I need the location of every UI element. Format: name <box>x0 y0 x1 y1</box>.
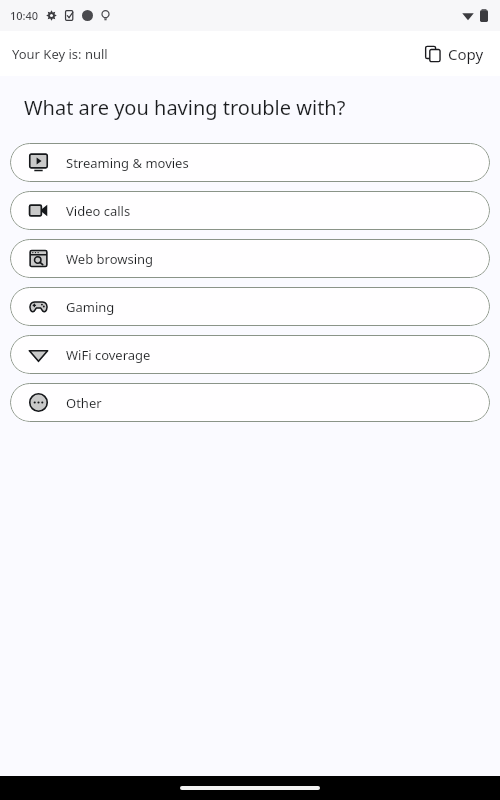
staticText: Video calls <box>66 202 131 220</box>
button[interactable]: Streaming & movies <box>10 143 490 182</box>
staticText: Streaming & movies <box>66 154 189 172</box>
button[interactable]: Other <box>10 383 490 422</box>
staticText: WiFi coverage <box>66 346 151 364</box>
other: Copy <box>425 46 441 62</box>
button[interactable]: Web browsing <box>10 239 490 278</box>
staticText: Other <box>66 394 102 412</box>
button[interactable]: Copy <box>421 40 488 68</box>
button[interactable]: Gaming <box>10 287 490 326</box>
button[interactable]: WiFi coverage <box>10 335 490 374</box>
staticText: What are you having trouble with? <box>24 94 346 121</box>
staticText: Web browsing <box>66 250 154 268</box>
staticText: Gaming <box>66 298 115 316</box>
button[interactable]: Video calls <box>10 191 490 230</box>
staticText: Copy <box>448 44 484 64</box>
staticText: 10:40 <box>10 8 39 23</box>
staticText: Your Key is: null <box>12 45 108 63</box>
